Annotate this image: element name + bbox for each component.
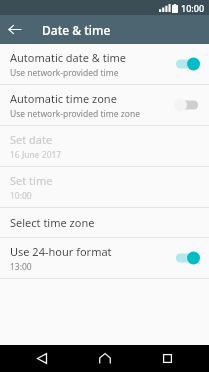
button[interactable]: Recent apps <box>147 345 187 372</box>
button[interactable]: Automatic date & time <box>0 44 209 84</box>
staticText: Automatic time zone <box>10 91 117 106</box>
button[interactable]: On <box>173 249 201 267</box>
staticText: Use network-provided time <box>10 67 119 79</box>
staticText: Use network-provided time zone <box>10 108 140 120</box>
button[interactable]: Navigate up <box>0 15 29 44</box>
staticText: Date & time <box>42 22 111 38</box>
button[interactable]: Automatic time zone <box>0 85 209 125</box>
staticText: 10:00 <box>10 190 32 202</box>
button[interactable]: Back <box>22 345 62 372</box>
button: Set time <box>0 167 209 207</box>
staticText: 10:00 <box>181 2 205 14</box>
staticText: Set time <box>10 173 53 188</box>
staticText: Set date <box>10 132 53 147</box>
staticText: 16 June 2017 <box>10 149 62 161</box>
button[interactable]: On <box>173 55 201 73</box>
button[interactable]: Select time zone <box>0 208 209 237</box>
button[interactable]: Use 24-hour format <box>0 238 209 278</box>
staticText: 13:00 <box>10 261 32 273</box>
button[interactable]: Off <box>173 96 201 114</box>
button: Set date <box>0 126 209 166</box>
staticText: Use 24-hour format <box>10 244 112 259</box>
button[interactable]: Home <box>85 345 125 372</box>
staticText: Automatic date & time <box>10 50 127 65</box>
staticText: Select time zone <box>10 215 95 230</box>
